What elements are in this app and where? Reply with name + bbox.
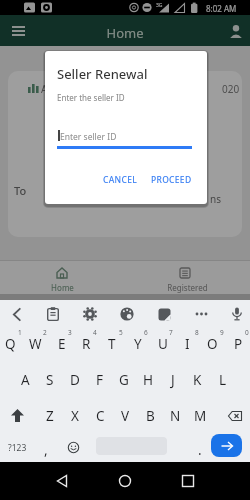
- staticText: Home: [0, 24, 250, 42]
- staticText: C: [96, 407, 105, 425]
- button[interactable]: V: [112, 399, 138, 432]
- button[interactable]: PROCEED: [144, 167, 199, 193]
- button[interactable]: [211, 434, 242, 457]
- button[interactable]: B: [137, 399, 163, 432]
- staticText: K: [193, 371, 202, 389]
- button[interactable]: .: [190, 433, 210, 466]
- staticText: S: [46, 371, 54, 389]
- button[interactable]: I: [175, 327, 200, 360]
- button[interactable]: [77, 304, 103, 324]
- button[interactable]: N: [162, 399, 188, 432]
- staticText: PROCEED: [151, 174, 192, 186]
- staticText: 8: [195, 328, 199, 337]
- button[interactable]: Home: [0, 261, 125, 300]
- staticText: 4: [93, 328, 97, 337]
- button[interactable]: [62, 435, 84, 460]
- staticText: Seller Renewal: [57, 65, 148, 83]
- button[interactable]: D: [62, 363, 87, 396]
- button[interactable]: M: [187, 399, 213, 432]
- button[interactable]: Z: [37, 399, 63, 432]
- staticText: P: [234, 335, 243, 353]
- staticText: 5: [119, 328, 123, 337]
- button[interactable]: Y: [125, 327, 150, 360]
- button[interactable]: Q: [0, 327, 23, 360]
- staticText: N: [170, 407, 181, 425]
- button[interactable]: A: [13, 363, 38, 396]
- staticText: U: [158, 335, 168, 353]
- button[interactable]: [6, 19, 30, 43]
- staticText: To: [14, 183, 27, 198]
- staticText: H: [143, 371, 154, 389]
- staticText: V: [121, 407, 130, 425]
- button[interactable]: F: [87, 363, 112, 396]
- button[interactable]: [224, 304, 250, 324]
- button[interactable]: J: [160, 363, 185, 396]
- button[interactable]: E: [49, 327, 74, 360]
- staticText: A: [21, 371, 30, 389]
- staticText: 020: [222, 82, 240, 96]
- button[interactable]: [42, 462, 84, 500]
- button[interactable]: Registered: [125, 261, 250, 300]
- button[interactable]: X: [62, 399, 88, 432]
- staticText: 7: [169, 328, 173, 337]
- staticText: 0: [245, 328, 249, 337]
- staticText: M: [194, 407, 207, 425]
- staticText: X: [71, 407, 79, 425]
- staticText: 6: [144, 328, 148, 337]
- button[interactable]: R: [74, 327, 99, 360]
- button[interactable]: [151, 304, 177, 324]
- staticText: O: [207, 335, 218, 353]
- staticText: 2: [43, 328, 47, 337]
- staticText: T: [108, 335, 116, 353]
- staticText: Q: [5, 335, 16, 353]
- button[interactable]: O: [200, 327, 225, 360]
- button[interactable]: ,: [36, 433, 56, 466]
- staticText: I: [185, 335, 190, 353]
- button[interactable]: [166, 462, 208, 500]
- staticText: ?123: [8, 442, 27, 454]
- staticText: CANCEL: [103, 174, 138, 186]
- staticText: 3: [68, 328, 72, 337]
- staticText: Enter the seller ID: [57, 92, 125, 103]
- button[interactable]: P: [226, 327, 250, 360]
- staticText: ns: [210, 192, 221, 206]
- button[interactable]: S: [37, 363, 62, 396]
- staticText: Registered: [125, 282, 250, 293]
- button[interactable]: H: [136, 363, 161, 396]
- staticText: E: [58, 335, 66, 353]
- staticText: R: [82, 335, 91, 353]
- staticText: Z: [46, 407, 54, 425]
- staticText: J: [171, 371, 175, 389]
- staticText: ,: [44, 441, 48, 459]
- staticText: D: [70, 371, 80, 389]
- staticText: Ap: [41, 82, 54, 96]
- button[interactable]: [3, 304, 29, 324]
- button[interactable]: [114, 304, 140, 324]
- staticText: 1: [18, 328, 22, 337]
- button[interactable]: G: [111, 363, 136, 396]
- button[interactable]: ?123: [2, 435, 32, 460]
- button[interactable]: U: [150, 327, 175, 360]
- button[interactable]: W: [23, 327, 48, 360]
- button[interactable]: [188, 304, 214, 324]
- button[interactable]: [104, 462, 146, 500]
- button[interactable]: [224, 19, 248, 43]
- button[interactable]: Enter seller ID: [57, 127, 192, 153]
- button[interactable]: CANCEL: [89, 167, 151, 193]
- staticText: G: [119, 371, 129, 389]
- staticText: Y: [134, 335, 142, 353]
- button[interactable]: [220, 399, 249, 432]
- staticText: W: [29, 335, 42, 353]
- button[interactable]: [40, 304, 66, 324]
- staticText: B: [146, 407, 155, 425]
- button[interactable]: C: [87, 399, 113, 432]
- staticText: L: [219, 371, 227, 389]
- button[interactable]: [2, 399, 32, 432]
- button[interactable]: T: [99, 327, 124, 360]
- staticText: F: [96, 371, 104, 389]
- button[interactable]: K: [185, 363, 210, 396]
- staticText: Home: [0, 282, 125, 293]
- button[interactable]: L: [210, 363, 235, 396]
- staticText: 3G: [156, 2, 163, 9]
